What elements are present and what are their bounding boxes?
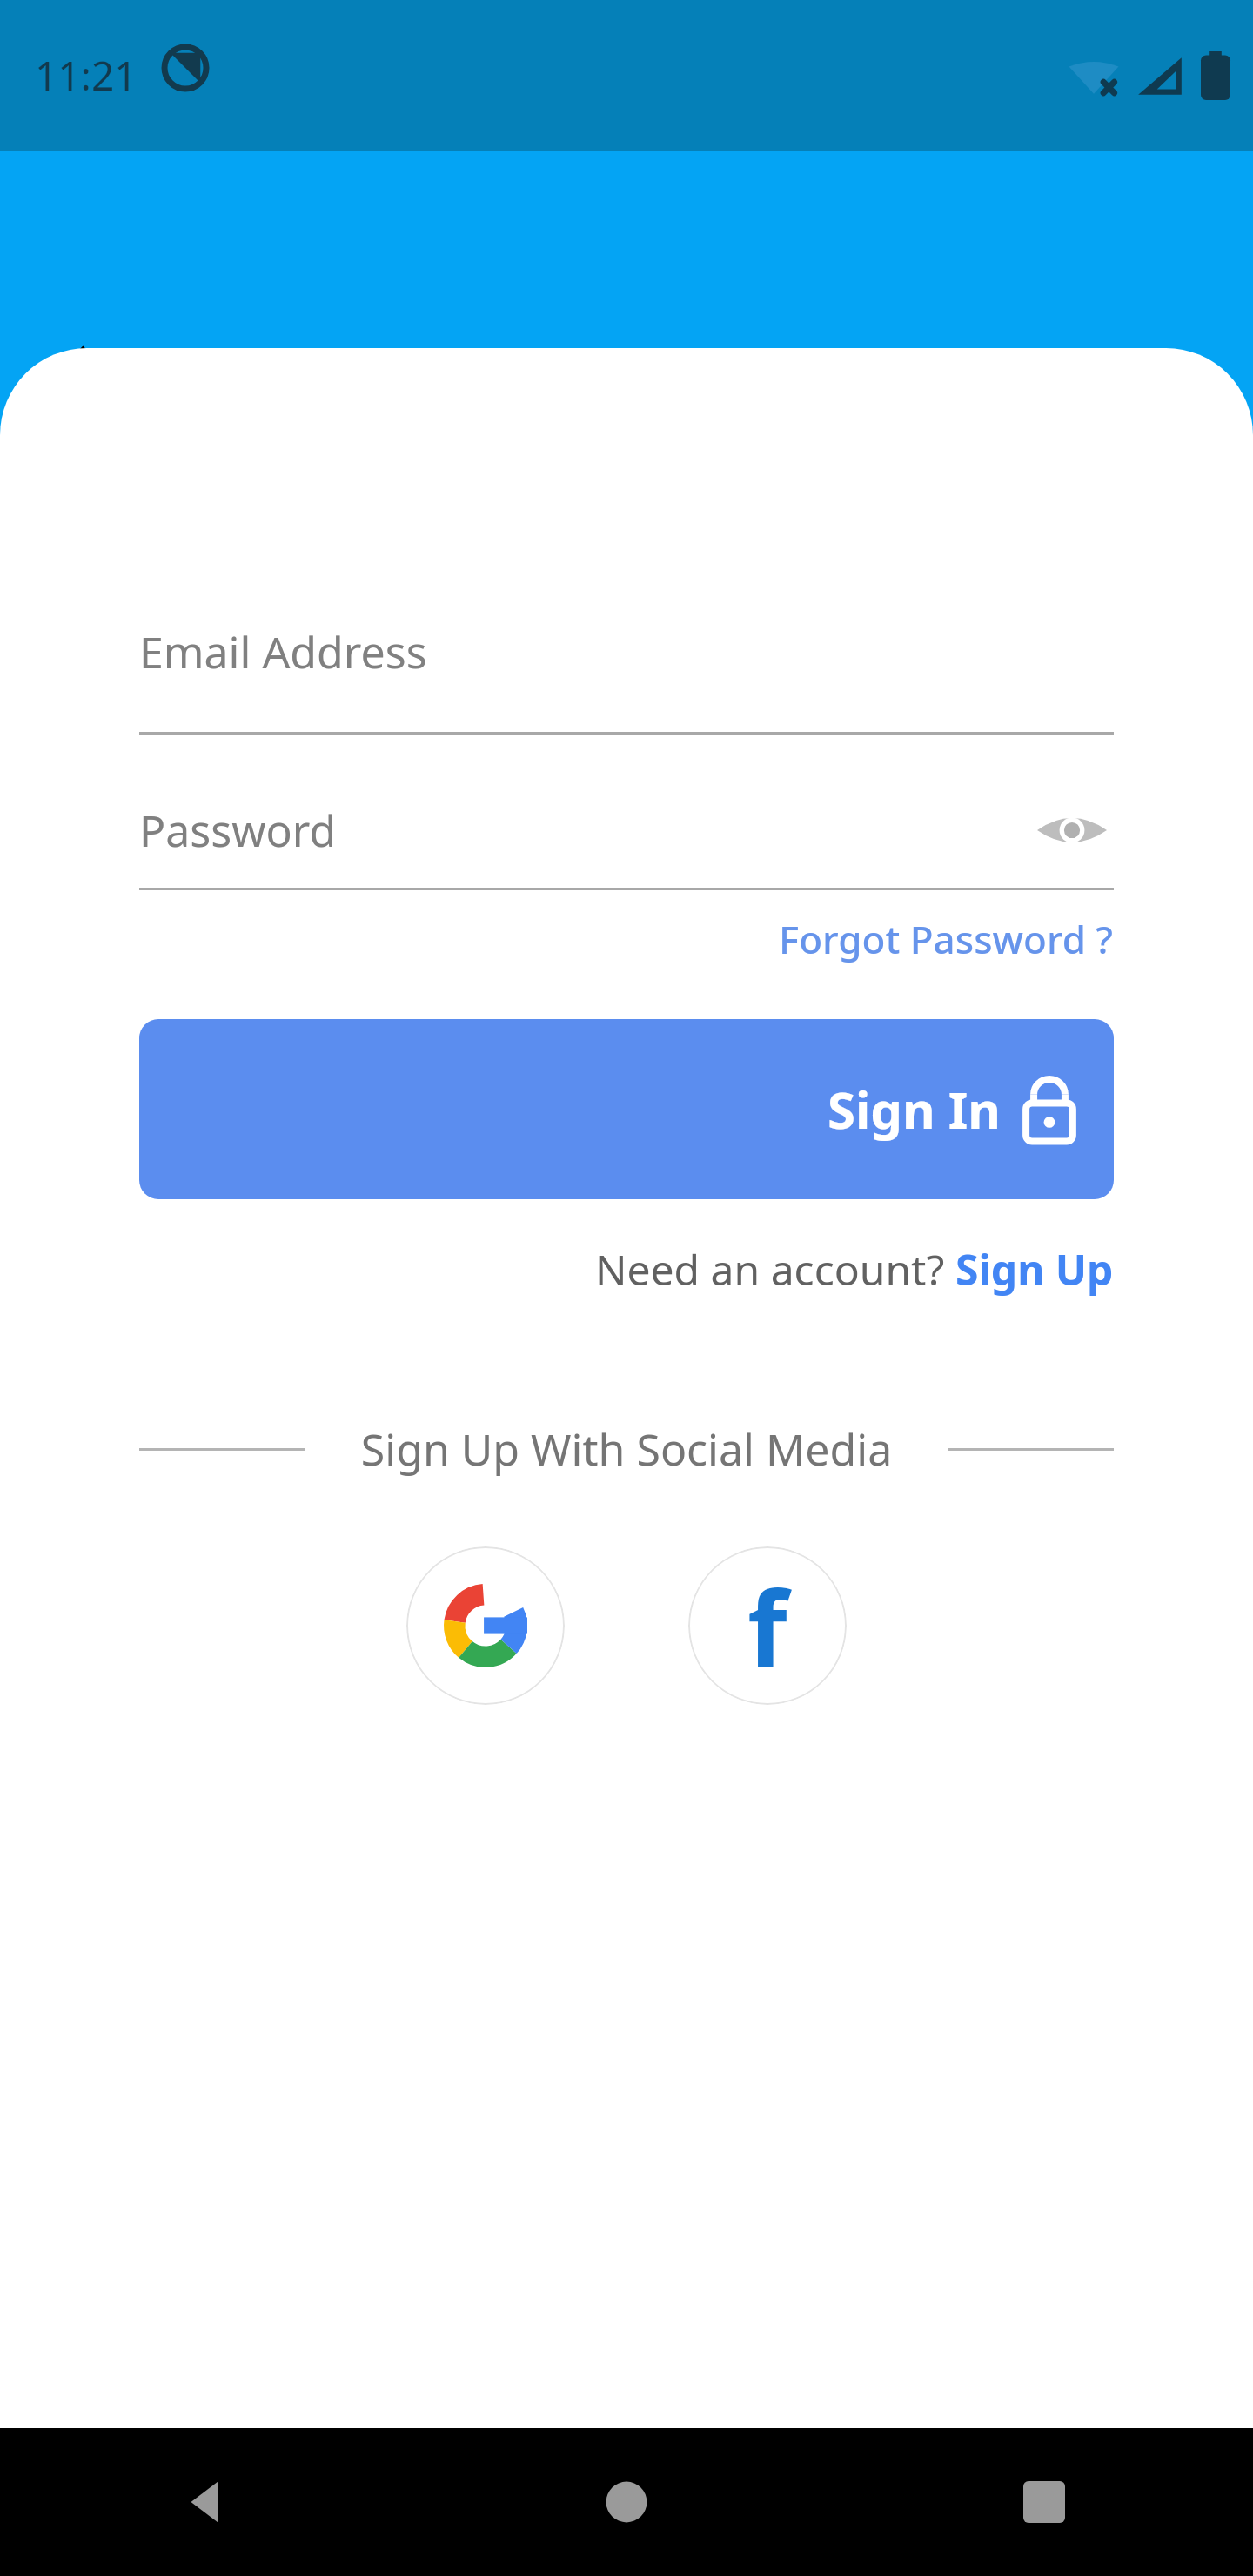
button[interactable]: Email Address xyxy=(139,622,1114,681)
button[interactable]: Home xyxy=(418,2428,835,2576)
staticText: f xyxy=(747,1556,787,1696)
button[interactable]: Sign up with Google xyxy=(406,1546,565,1705)
button[interactable]: More xyxy=(1002,2438,1253,2576)
button[interactable]: Recent apps xyxy=(835,2428,1253,2576)
button[interactable]: Back xyxy=(0,2428,418,2576)
staticText: Sign Up xyxy=(955,1241,1114,1298)
staticText: Email Address xyxy=(139,622,427,681)
button[interactable]: Sign up with Facebook xyxy=(688,1546,847,1705)
button[interactable]: Home xyxy=(0,2438,251,2576)
button[interactable]: Show password xyxy=(1030,788,1114,872)
button[interactable]: Library xyxy=(501,2438,752,2576)
button[interactable]: Sign Up xyxy=(955,1241,1114,1298)
staticText: Forgot Password ? xyxy=(779,913,1114,965)
button[interactable]: Password xyxy=(139,801,1030,860)
staticText: Sign Up With Social Media xyxy=(305,1419,948,1479)
button[interactable]: Forgot Password ? xyxy=(779,913,1114,965)
button[interactable]: Back xyxy=(37,325,134,422)
staticText: Password xyxy=(139,801,337,860)
staticText: 11:21 xyxy=(35,48,137,103)
staticText: Sign In xyxy=(828,1075,1001,1144)
staticText: Need an account? xyxy=(595,1241,955,1298)
button[interactable]: Sign In xyxy=(139,1019,1114,1199)
